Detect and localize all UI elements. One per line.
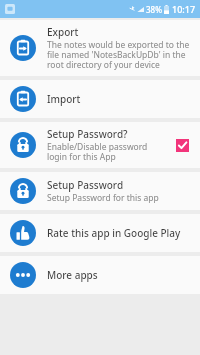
- button[interactable]: Export: [0, 20, 200, 76]
- button[interactable]: More apps: [0, 256, 200, 294]
- staticText: 10:17: [172, 3, 196, 15]
- other: Import: [10, 86, 36, 112]
- button[interactable]: Rate this app in Google Play: [0, 214, 200, 252]
- staticText: Setup Password?: [47, 127, 128, 141]
- staticText: Import: [47, 92, 81, 106]
- button[interactable]: Import: [0, 80, 200, 118]
- button[interactable]: Password: [0, 172, 200, 210]
- staticText: Rate this app in Google Play: [47, 226, 181, 240]
- other: More apps: [10, 262, 36, 288]
- other: Password: [10, 132, 36, 158]
- staticText: Setup Password for this app: [47, 192, 159, 204]
- staticText: Export: [47, 25, 79, 39]
- staticText: Setup Password: [47, 178, 124, 192]
- button[interactable]: Enable password login: [174, 137, 191, 154]
- staticText: Enable/Disable password login for this A…: [47, 141, 168, 163]
- other: Export: [10, 35, 36, 61]
- other: Password: [10, 178, 36, 204]
- other: Rate this app in Google Play: [10, 220, 36, 246]
- staticText: 38%: [146, 4, 162, 15]
- staticText: The notes would be exported to the file …: [47, 39, 191, 71]
- button[interactable]: Password: [0, 122, 200, 168]
- staticText: More apps: [47, 268, 98, 282]
